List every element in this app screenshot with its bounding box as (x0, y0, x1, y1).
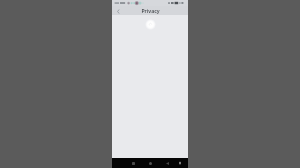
button[interactable]: Screenshot (175, 158, 185, 168)
button[interactable]: Back (114, 7, 122, 15)
staticText: Privacy (141, 7, 160, 14)
button[interactable]: Recents (128, 158, 138, 168)
button[interactable]: Home (145, 158, 155, 168)
button[interactable]: Back (162, 158, 172, 168)
